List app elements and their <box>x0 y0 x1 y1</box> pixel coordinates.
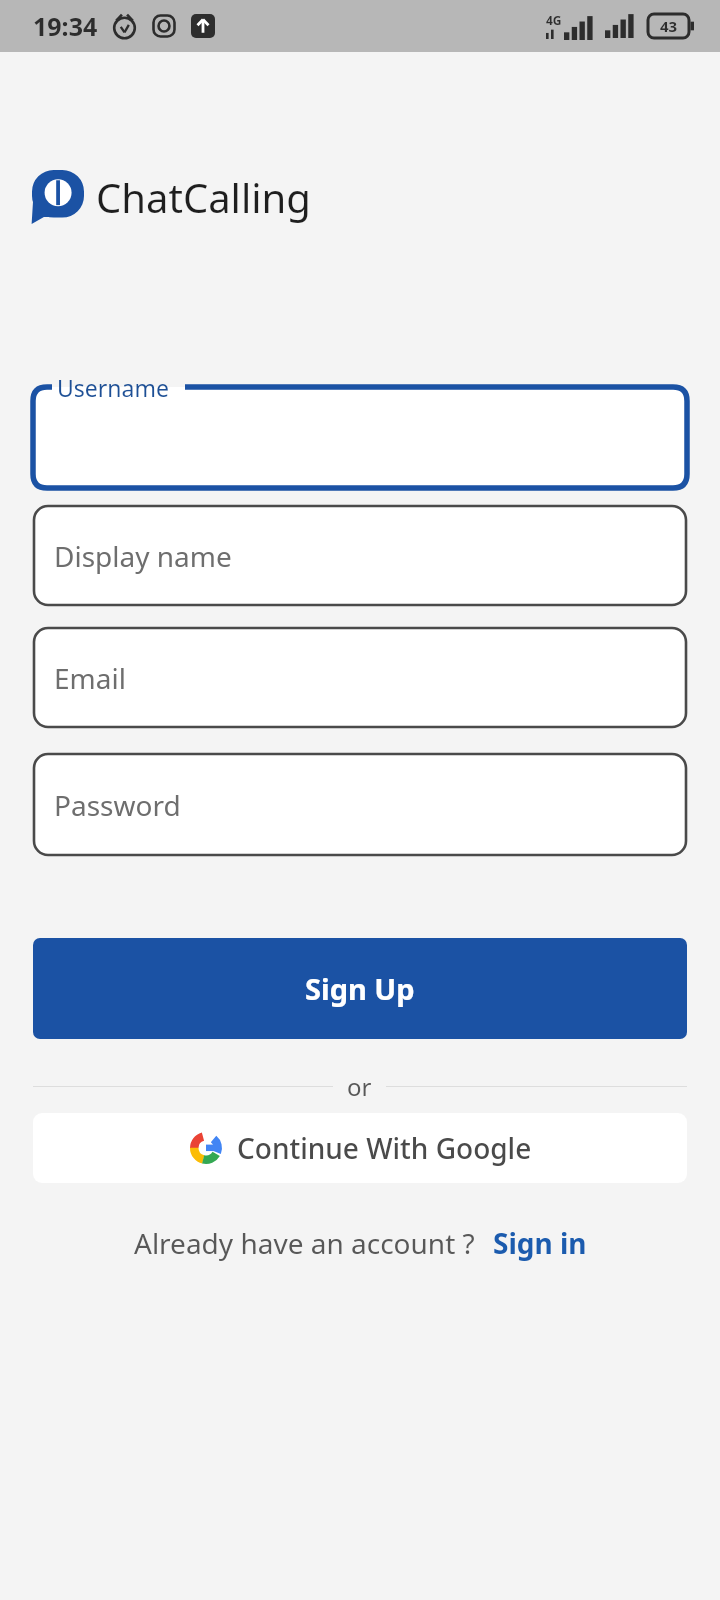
button[interactable]: Continue With Google <box>33 1113 687 1183</box>
staticText: or <box>347 1070 372 1103</box>
button[interactable]: Email <box>33 627 687 728</box>
button[interactable]: Username field <box>33 387 687 488</box>
staticText: Sign Up <box>305 969 415 1008</box>
button[interactable]: Password <box>33 753 687 856</box>
staticText: ChatCalling <box>96 170 311 224</box>
staticText: Sign in <box>493 1224 587 1262</box>
staticText: Continue With Google <box>237 1129 532 1167</box>
staticText: Username <box>57 372 169 403</box>
button[interactable]: Display name <box>33 505 687 606</box>
staticText: Already have an account ? <box>134 1224 475 1262</box>
button[interactable]: Sign Up <box>33 938 687 1039</box>
staticText: Display name <box>54 537 232 575</box>
staticText: Email <box>54 659 126 697</box>
staticText: 4G <box>546 12 562 28</box>
staticText: 43 <box>660 16 678 36</box>
staticText: 19:34 <box>33 9 98 43</box>
staticText: Password <box>54 786 181 824</box>
button[interactable]: Sign in <box>493 1224 587 1262</box>
